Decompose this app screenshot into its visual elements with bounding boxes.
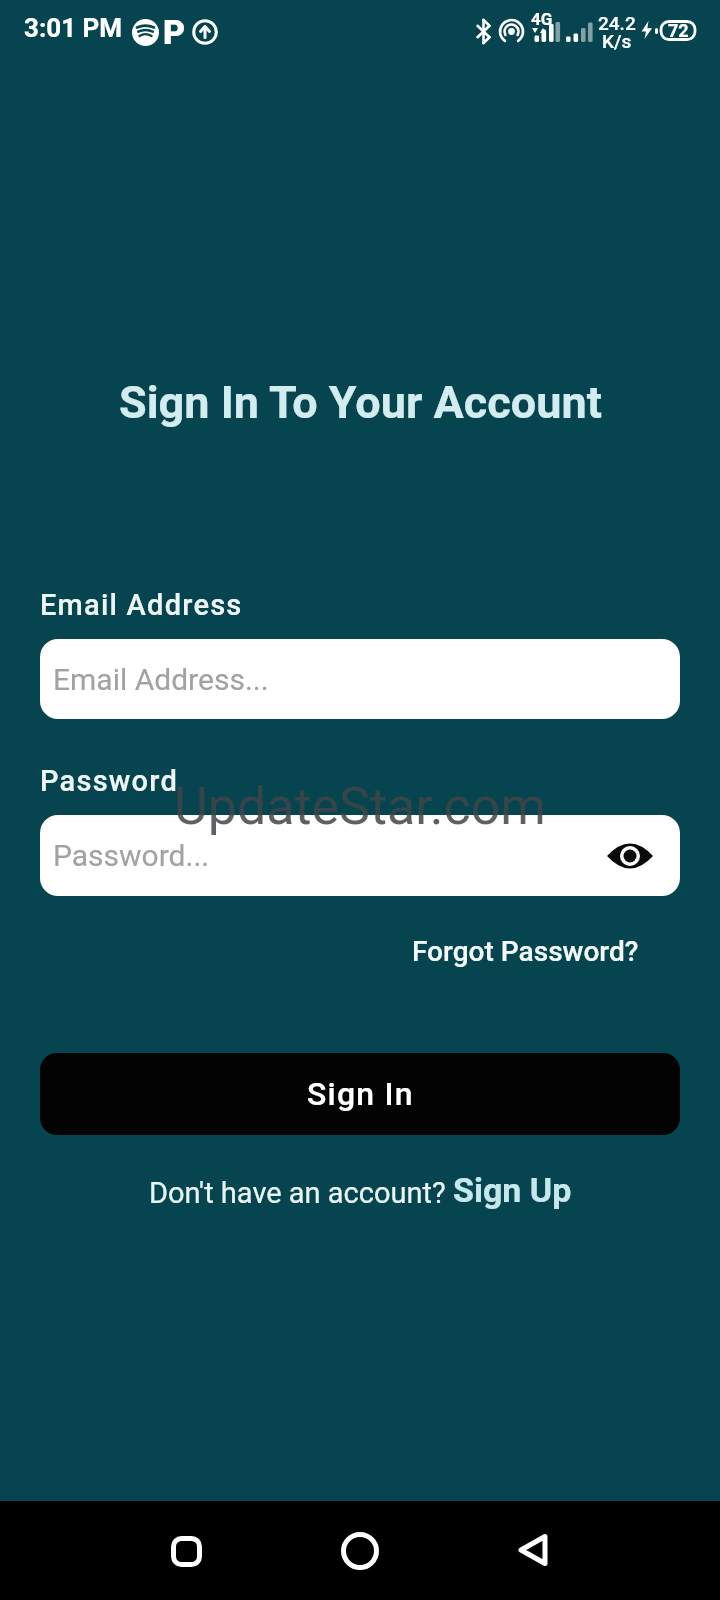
staticText: Password xyxy=(40,764,179,798)
staticText: Forgot Password? xyxy=(412,935,639,968)
staticText: Password... xyxy=(53,838,210,873)
staticText: Sign Up xyxy=(453,1170,572,1210)
staticText: 24.2 xyxy=(598,12,636,34)
staticText: P xyxy=(163,12,186,52)
staticText: Email Address xyxy=(40,588,243,622)
staticText: Email Address... xyxy=(53,662,269,697)
button[interactable] xyxy=(607,840,653,872)
staticText: Sign In xyxy=(307,1075,414,1113)
staticText: 4G xyxy=(531,9,553,29)
button[interactable]: Password... xyxy=(40,815,680,896)
button[interactable] xyxy=(504,1521,564,1581)
staticText: K/s xyxy=(602,30,632,52)
button[interactable] xyxy=(330,1521,390,1581)
staticText: 72 xyxy=(668,20,689,41)
staticText: Sign In To Your Account xyxy=(119,376,602,429)
button[interactable]: Sign In xyxy=(40,1053,680,1135)
button[interactable]: Sign Up xyxy=(453,1170,572,1210)
button[interactable] xyxy=(156,1521,216,1581)
staticText: UpdateStar.com xyxy=(174,776,546,837)
button[interactable]: Email Address... xyxy=(40,639,680,719)
button[interactable]: Forgot Password? xyxy=(412,935,639,968)
staticText: Don't have an account? xyxy=(149,1176,453,1210)
staticText: 3:01 PM xyxy=(24,13,123,43)
